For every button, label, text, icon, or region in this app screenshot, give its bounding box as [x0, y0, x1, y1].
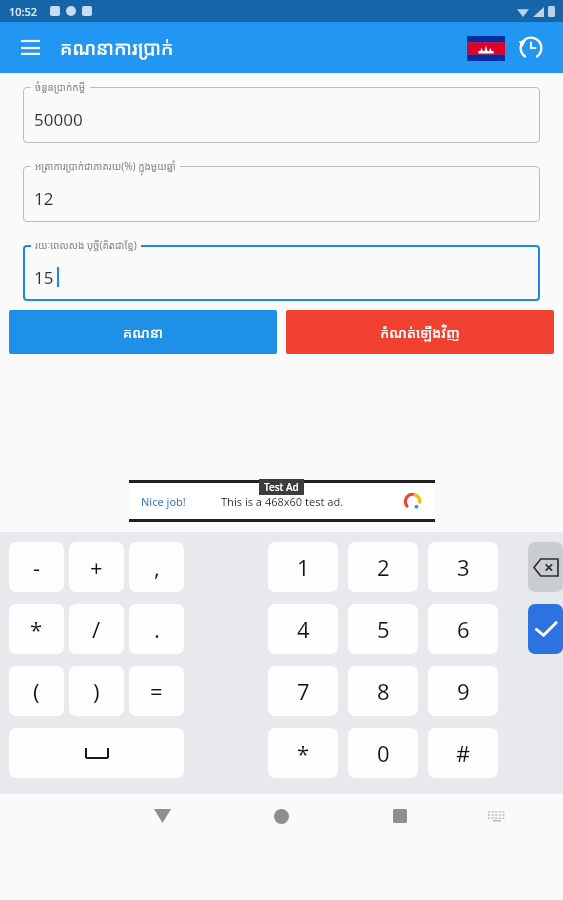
staticText: 12	[34, 187, 54, 210]
button[interactable]: -	[9, 542, 64, 592]
staticText: .	[154, 614, 160, 644]
staticText: Test Ad	[264, 480, 299, 494]
staticText: 15	[34, 266, 54, 289]
staticText: កំណត់ឡើងវិញ	[380, 323, 460, 342]
staticText: ចំនួនប្រាក់កម្ចី	[35, 80, 86, 94]
button[interactable]: #	[428, 728, 498, 778]
staticText: )	[93, 676, 100, 706]
staticText: (	[33, 676, 40, 706]
staticText: 10:52	[9, 4, 38, 19]
button[interactable]: 6	[428, 604, 498, 654]
button[interactable]: Change language	[463, 25, 509, 71]
button[interactable]: History	[509, 26, 553, 70]
button[interactable]: Space	[9, 728, 184, 778]
button[interactable]: 8	[348, 666, 418, 716]
staticText: -	[33, 552, 41, 582]
staticText: រយៈពេលសង បុច្ឆី(គិតជាខ្នែ)	[35, 238, 137, 252]
button[interactable]: 3	[428, 542, 498, 592]
button[interactable]: Backspace	[528, 542, 563, 592]
staticText: 0	[377, 738, 390, 768]
button[interactable]: )	[69, 666, 124, 716]
button[interactable]: Nice job!	[129, 483, 435, 519]
button[interactable]: 7	[268, 666, 338, 716]
button[interactable]: 1	[268, 542, 338, 592]
button[interactable]: 5	[348, 604, 418, 654]
staticText: 4	[297, 614, 310, 644]
button[interactable]: *	[268, 728, 338, 778]
staticText: #	[456, 738, 471, 768]
button[interactable]: 0	[348, 728, 418, 778]
staticText: គណនាការប្រាក់	[60, 35, 174, 61]
button[interactable]: កំណត់ឡើងវិញ	[286, 310, 554, 354]
button[interactable]: Home	[260, 795, 302, 837]
button[interactable]: 9	[428, 666, 498, 716]
staticText: 7	[297, 676, 310, 706]
button[interactable]: 4	[268, 604, 338, 654]
button[interactable]: =	[129, 666, 184, 716]
staticText: 1	[297, 552, 310, 582]
button[interactable]: .	[129, 604, 184, 654]
staticText: This is a 468x60 test ad.	[221, 494, 344, 509]
staticText: 5	[377, 614, 390, 644]
staticText: 2	[377, 552, 390, 582]
button[interactable]: គណនា	[9, 310, 277, 354]
staticText: 6	[457, 614, 470, 644]
button[interactable]: Switch keyboard	[477, 796, 517, 836]
button[interactable]: 50000	[23, 87, 540, 143]
button[interactable]: Recent apps	[379, 795, 421, 837]
button[interactable]: 12	[23, 166, 540, 222]
button[interactable]: 2	[348, 542, 418, 592]
button[interactable]: *	[9, 604, 64, 654]
staticText: 8	[377, 676, 390, 706]
staticText: អត្រាការប្រាក់ជាភាគរយ(%) ក្នុងមួយឆ្នាំ	[35, 159, 176, 173]
button[interactable]: 15	[23, 245, 540, 301]
staticText: *	[30, 614, 43, 644]
staticText: /	[92, 614, 101, 644]
button[interactable]: Back	[141, 795, 183, 837]
button[interactable]: /	[69, 604, 124, 654]
button[interactable]: +	[69, 542, 124, 592]
staticText: +	[90, 552, 103, 582]
staticText: គណនា	[123, 323, 163, 342]
staticText: =	[150, 676, 163, 706]
staticText: *	[297, 738, 310, 768]
button[interactable]: Open navigation menu	[10, 28, 50, 68]
button[interactable]: (	[9, 666, 64, 716]
staticText: 50000	[34, 108, 83, 131]
button[interactable]: Done	[528, 604, 563, 654]
staticText: ,	[154, 552, 160, 582]
staticText: 3	[457, 552, 470, 582]
staticText: 9	[457, 676, 470, 706]
staticText: Nice job!	[141, 494, 186, 509]
button[interactable]: ,	[129, 542, 184, 592]
